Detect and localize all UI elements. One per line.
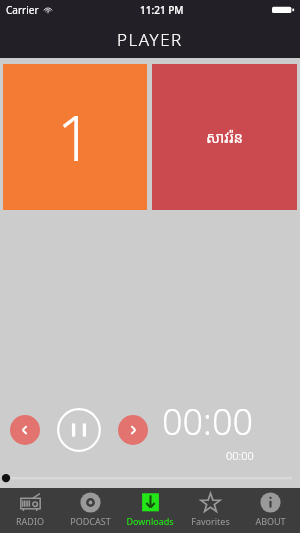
button[interactable]: Favorites	[180, 488, 240, 533]
staticText: Carrier	[6, 3, 39, 17]
staticText: 00:00	[162, 397, 254, 446]
button[interactable]: Seek	[0, 466, 300, 488]
button[interactable]: Pause	[57, 408, 101, 452]
button[interactable]: Downloads	[120, 488, 180, 533]
staticText: 1	[57, 95, 93, 179]
staticText: Favorites	[191, 515, 230, 527]
button[interactable]: RADIO	[0, 488, 60, 533]
button[interactable]: Previous	[10, 415, 40, 445]
staticText: 00:00	[226, 448, 254, 463]
button[interactable]: Next	[118, 415, 148, 445]
button[interactable]: ABOUT	[240, 488, 300, 533]
staticText: PLAYER	[117, 28, 183, 51]
staticText: RADIO	[16, 515, 44, 527]
staticText: សាវរ៉ន	[206, 127, 243, 147]
button[interactable]: 1	[3, 64, 147, 210]
staticText: PODCAST	[70, 515, 111, 527]
button[interactable]: PODCAST	[60, 488, 120, 533]
button[interactable]: សាវរ៉ន	[152, 64, 297, 210]
staticText: ABOUT	[255, 515, 286, 527]
staticText: Downloads	[126, 515, 174, 527]
staticText: 11:21 PM	[140, 3, 184, 17]
